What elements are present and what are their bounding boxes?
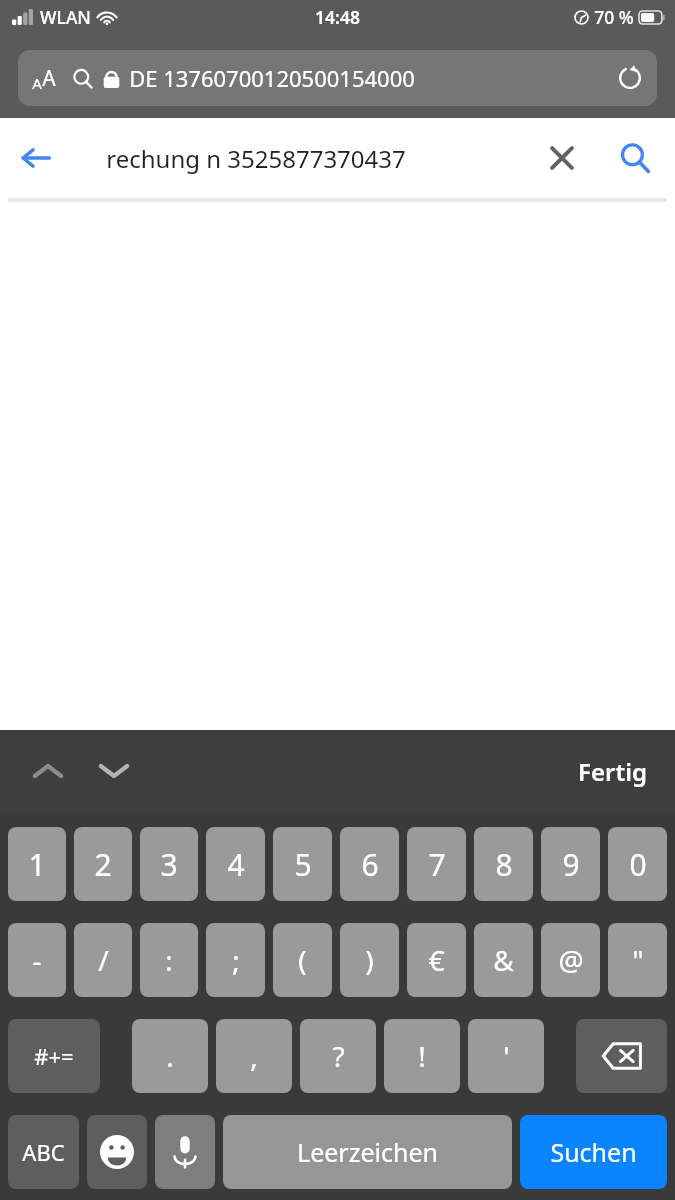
staticText: ) xyxy=(365,941,374,979)
button[interactable]: Search xyxy=(595,118,675,198)
button[interactable]: / xyxy=(74,923,132,997)
button[interactable]: ! xyxy=(384,1019,460,1093)
button[interactable]: ' xyxy=(468,1019,544,1093)
staticText: Suchen xyxy=(550,1135,637,1169)
staticText: - xyxy=(32,941,42,979)
button[interactable]: Emoji xyxy=(87,1115,147,1189)
button[interactable]: 8 xyxy=(474,827,533,901)
staticText: € xyxy=(428,941,445,979)
button[interactable]: - xyxy=(8,923,66,997)
staticText: Leerzeichen xyxy=(297,1135,438,1169)
button[interactable]: Clear xyxy=(529,125,595,191)
button[interactable]: & xyxy=(474,923,533,997)
staticText: ; xyxy=(232,941,240,979)
button[interactable]: . xyxy=(132,1019,208,1093)
button[interactable]: ? xyxy=(300,1019,376,1093)
staticText: DE 13760700120500154000 xyxy=(129,63,415,93)
staticText: ' xyxy=(503,1037,510,1075)
button[interactable]: € xyxy=(407,923,466,997)
button[interactable]: ( xyxy=(273,923,332,997)
staticText: " xyxy=(632,941,644,979)
button[interactable]: 7 xyxy=(407,827,466,901)
button[interactable]: Back xyxy=(0,122,72,194)
button[interactable]: A xyxy=(18,50,657,106)
staticText: ! xyxy=(418,1037,426,1075)
button[interactable]: 4 xyxy=(206,827,265,901)
button[interactable]: Dictation xyxy=(155,1115,215,1189)
button[interactable]: Leerzeichen xyxy=(223,1115,512,1189)
staticText: WLAN xyxy=(40,5,91,29)
staticText: 7 xyxy=(428,844,446,885)
button[interactable]: ABC xyxy=(8,1115,79,1189)
button[interactable]: #+= xyxy=(8,1019,100,1093)
staticText: 4 xyxy=(227,844,245,885)
staticText: #+= xyxy=(34,1041,74,1071)
staticText: . xyxy=(166,1037,174,1075)
staticText: A xyxy=(32,73,42,93)
button[interactable]: ; xyxy=(206,923,265,997)
staticText: 2 xyxy=(94,844,112,885)
button[interactable]: ) xyxy=(340,923,399,997)
button[interactable]: 0 xyxy=(608,827,667,901)
button[interactable]: Suchen xyxy=(520,1115,667,1189)
button[interactable]: Next field xyxy=(88,745,140,797)
button[interactable]: 5 xyxy=(273,827,332,901)
staticText: & xyxy=(493,941,514,979)
staticText: A xyxy=(42,64,56,93)
staticText: ? xyxy=(332,1037,345,1075)
button[interactable]: 6 xyxy=(340,827,399,901)
button[interactable]: Previous field xyxy=(22,745,74,797)
staticText: 9 xyxy=(562,844,580,885)
button[interactable]: 3 xyxy=(140,827,198,901)
button[interactable]: 1 xyxy=(8,827,66,901)
staticText: 0 xyxy=(629,844,647,885)
button[interactable]: : xyxy=(140,923,198,997)
other: Reload xyxy=(617,65,643,91)
staticText: : xyxy=(165,941,173,979)
button[interactable]: @ xyxy=(541,923,600,997)
staticText: 14:48 xyxy=(315,5,360,29)
staticText: @ xyxy=(558,941,584,979)
staticText: , xyxy=(250,1037,258,1075)
staticText: / xyxy=(98,941,109,979)
staticText: 1 xyxy=(28,844,46,885)
staticText: rechung n 3525877370437 xyxy=(106,142,406,175)
button[interactable]: , xyxy=(216,1019,292,1093)
staticText: 70 % xyxy=(594,5,634,29)
button[interactable]: Backspace xyxy=(576,1019,667,1093)
staticText: Fertig xyxy=(578,755,647,788)
button[interactable]: " xyxy=(608,923,667,997)
staticText: 5 xyxy=(294,844,312,885)
other: Search xyxy=(72,68,93,89)
button[interactable]: 2 xyxy=(74,827,132,901)
staticText: 8 xyxy=(495,844,513,885)
staticText: ( xyxy=(298,941,307,979)
button[interactable]: 9 xyxy=(541,827,600,901)
staticText: 6 xyxy=(361,844,379,885)
button[interactable]: Fertig xyxy=(566,749,659,794)
staticText: ABC xyxy=(22,1137,65,1167)
staticText: 3 xyxy=(160,844,178,885)
